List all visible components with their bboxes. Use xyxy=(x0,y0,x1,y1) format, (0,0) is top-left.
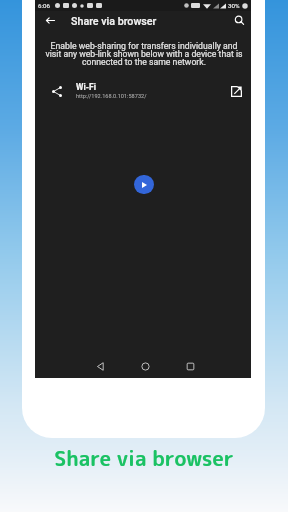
staticText: 6:06 xyxy=(38,2,50,9)
staticText: Share via browser xyxy=(54,444,234,473)
staticText: http://192.168.0.101:58732/ xyxy=(76,93,147,100)
button[interactable]: Wi-Fi xyxy=(35,77,251,105)
button[interactable]: Recent apps xyxy=(179,355,201,377)
staticText: Enable web-sharing for transfers individ… xyxy=(43,41,245,68)
staticText: Wi-Fi xyxy=(76,82,96,92)
button[interactable]: Home xyxy=(134,355,156,377)
button[interactable]: Navigate up xyxy=(42,12,58,28)
staticText: Share via browser xyxy=(71,15,157,28)
button[interactable]: Play xyxy=(134,175,154,194)
button[interactable]: Open in browser xyxy=(228,83,244,99)
button[interactable]: Search xyxy=(231,12,247,28)
staticText: 30% xyxy=(228,2,240,9)
button[interactable]: Back xyxy=(89,355,111,377)
